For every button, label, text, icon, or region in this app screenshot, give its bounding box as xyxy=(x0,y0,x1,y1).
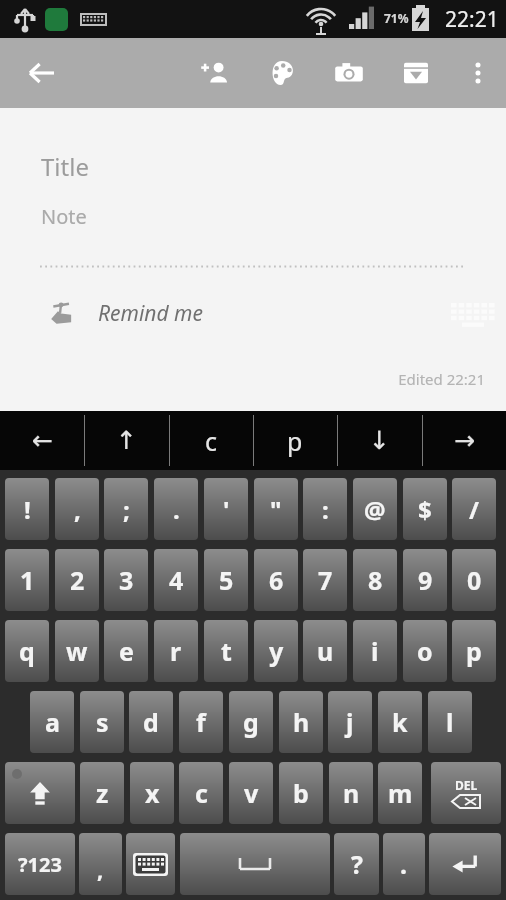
button[interactable]: key p xyxy=(253,411,337,470)
button[interactable]: key ← xyxy=(0,411,84,470)
staticText: , xyxy=(97,854,104,884)
button[interactable]: key c xyxy=(169,411,253,470)
button[interactable]: ! xyxy=(5,478,49,540)
button[interactable]: w xyxy=(55,620,99,682)
button[interactable]: f xyxy=(179,691,223,753)
button[interactable]: p xyxy=(452,620,496,682)
staticText: ; xyxy=(123,493,130,526)
button[interactable]: 0 xyxy=(452,549,496,611)
staticText: Edited 22:21 xyxy=(0,369,485,389)
button[interactable]: e xyxy=(104,620,148,682)
staticText: Remind me xyxy=(98,299,203,328)
button[interactable]: s xyxy=(80,691,124,753)
button[interactable]: 9 xyxy=(403,549,447,611)
button[interactable]: i xyxy=(353,620,397,682)
button[interactable]: key ↑ xyxy=(84,411,168,470)
button[interactable]: Back xyxy=(14,38,70,108)
button[interactable]: g xyxy=(229,691,273,753)
staticText: 71% xyxy=(384,10,409,26)
staticText: w xyxy=(66,634,88,668)
button[interactable]: u xyxy=(303,620,347,682)
button[interactable]: o xyxy=(403,620,447,682)
button[interactable]: c xyxy=(179,762,223,824)
staticText: : xyxy=(322,493,329,526)
staticText: 6 xyxy=(269,563,284,597)
staticText: DEL xyxy=(455,777,478,793)
button[interactable]: " xyxy=(254,478,298,540)
button[interactable]: r xyxy=(154,620,198,682)
button[interactable]: 5 xyxy=(204,549,248,611)
button[interactable]: . xyxy=(383,833,425,895)
button[interactable]: ; xyxy=(104,478,148,540)
button[interactable]: ' xyxy=(204,478,248,540)
button[interactable]: h xyxy=(279,691,323,753)
button[interactable]: k xyxy=(378,691,422,753)
button[interactable]: q xyxy=(5,620,49,682)
button[interactable]: 3 xyxy=(104,549,148,611)
button[interactable]: 8 xyxy=(353,549,397,611)
staticText: o xyxy=(417,634,433,668)
button[interactable]: z xyxy=(80,762,124,824)
staticText: 8 xyxy=(368,563,383,597)
staticText: ?123 xyxy=(18,851,62,878)
button[interactable]: More options xyxy=(456,38,500,108)
button[interactable]: Remind me xyxy=(0,288,506,338)
button[interactable]: l xyxy=(428,691,472,753)
button[interactable]: x xyxy=(130,762,174,824)
button[interactable]: 1 xyxy=(5,549,49,611)
button[interactable]: . xyxy=(154,478,198,540)
button[interactable]: @ xyxy=(353,478,397,540)
button[interactable]: key ↓ xyxy=(337,411,421,470)
button[interactable]: Add image xyxy=(323,38,375,108)
staticText: ↑ xyxy=(116,426,137,455)
button[interactable]: , xyxy=(55,478,99,540)
button[interactable]: m xyxy=(378,762,422,824)
button[interactable]: key → xyxy=(422,411,506,470)
staticText: p xyxy=(287,424,303,458)
button[interactable]: 6 xyxy=(254,549,298,611)
button[interactable]: v xyxy=(229,762,273,824)
staticText: r xyxy=(170,634,182,668)
staticText: c xyxy=(195,776,208,810)
staticText: z xyxy=(96,776,109,810)
staticText: b xyxy=(293,776,309,810)
button[interactable]: 4 xyxy=(154,549,198,611)
button[interactable]: Change color xyxy=(256,38,308,108)
button[interactable]: ? xyxy=(334,833,379,895)
button[interactable]: Title xyxy=(41,150,89,183)
button[interactable]: 7 xyxy=(303,549,347,611)
staticText: q xyxy=(19,634,35,668)
button[interactable]: Note xyxy=(41,203,87,230)
button[interactable]: a xyxy=(30,691,74,753)
staticText: 9 xyxy=(418,563,433,597)
staticText: 0 xyxy=(467,563,482,597)
button[interactable]: Archive xyxy=(390,38,442,108)
staticText: f xyxy=(196,705,206,739)
button[interactable]: b xyxy=(279,762,323,824)
staticText: 1 xyxy=(20,563,35,597)
staticText: p xyxy=(466,634,482,668)
button[interactable]: n xyxy=(329,762,373,824)
button[interactable]: ?123 xyxy=(5,833,75,895)
button[interactable]: Enter xyxy=(429,833,501,895)
button[interactable]: y xyxy=(254,620,298,682)
button[interactable]: Switch keyboard xyxy=(126,833,175,895)
staticText: → xyxy=(454,426,475,455)
button[interactable]: / xyxy=(452,478,496,540)
staticText: i xyxy=(371,634,379,668)
button[interactable]: Add collaborator xyxy=(189,38,241,108)
staticText: n xyxy=(343,776,360,810)
button[interactable]: t xyxy=(204,620,248,682)
button[interactable]: : xyxy=(303,478,347,540)
button[interactable]: $ xyxy=(403,478,447,540)
button[interactable]: Shift xyxy=(5,762,75,824)
button[interactable]: Comma xyxy=(79,833,122,895)
button[interactable]: d xyxy=(129,691,173,753)
button[interactable]: Delete xyxy=(431,762,501,824)
staticText: l xyxy=(446,705,454,739)
button[interactable]: 2 xyxy=(55,549,99,611)
button[interactable]: j xyxy=(328,691,372,753)
staticText: . xyxy=(173,493,180,526)
staticText: d xyxy=(143,705,159,739)
button[interactable]: Space xyxy=(180,833,330,895)
